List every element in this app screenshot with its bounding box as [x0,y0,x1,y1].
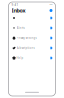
button[interactable]: Subscriptions [8,43,55,53]
staticText: ••• [49,3,52,7]
button[interactable]: Profile [49,9,52,12]
button[interactable] [8,13,55,23]
staticText: Inbox [11,7,25,14]
staticText: Alerts [16,26,24,30]
staticText: Subscriptions [16,46,34,50]
button[interactable]: Privacy Settings [8,33,55,43]
staticText: 9:41 [11,3,18,7]
button[interactable]: Help [8,53,55,63]
button[interactable]: Alerts [8,23,55,33]
staticText: Privacy Settings [16,36,36,40]
staticText: Help [16,56,23,60]
